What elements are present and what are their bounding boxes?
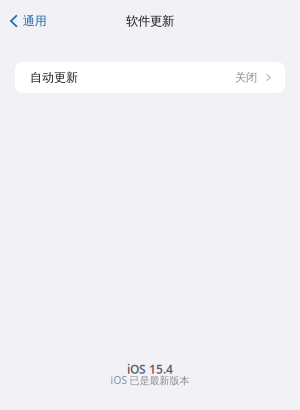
- button[interactable]: 自动更新: [15, 62, 285, 93]
- staticText: 软件更新: [126, 13, 174, 29]
- staticText: iOS 15.4: [127, 361, 173, 377]
- staticText: 自动更新: [30, 70, 78, 85]
- staticText: 通用: [23, 13, 47, 28]
- staticText: iOS 已是最新版本: [110, 373, 189, 387]
- button[interactable]: 通用: [0, 7, 55, 35]
- staticText: 关闭: [235, 70, 257, 85]
